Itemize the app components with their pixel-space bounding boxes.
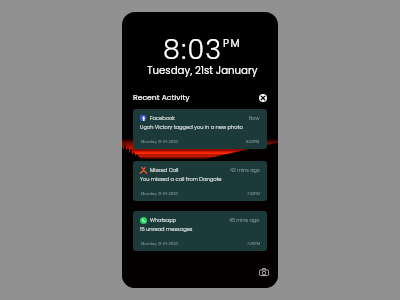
staticText: Now bbox=[249, 115, 260, 122]
button[interactable]: Missed Call bbox=[133, 161, 267, 201]
button[interactable]: Clear notifications bbox=[259, 94, 267, 102]
button[interactable]: Recent Activity bbox=[133, 92, 190, 103]
button[interactable]: Camera bbox=[251, 259, 276, 284]
staticText: Ugoh Victory tagged you in a new photo bbox=[140, 124, 243, 131]
staticText: 7:29PM bbox=[247, 241, 260, 246]
staticText: PM bbox=[223, 36, 242, 51]
staticText: 8:03PM bbox=[246, 139, 260, 144]
staticText: Monday 21-01-2020 bbox=[141, 139, 178, 144]
staticText: 8:03 bbox=[163, 31, 223, 69]
staticText: Monday 21-01-2020 bbox=[141, 241, 178, 246]
staticText: Monday 21-01-2020 bbox=[141, 191, 178, 196]
staticText: Tuesday, 21st January bbox=[147, 63, 258, 77]
staticText: 7:32PM bbox=[247, 191, 260, 196]
staticText: You missed a call from Dangote bbox=[140, 176, 222, 183]
button[interactable]: Facebook bbox=[133, 109, 267, 149]
button[interactable]: Whatsapp bbox=[133, 211, 267, 251]
staticText: 45 mins ago bbox=[229, 217, 260, 224]
staticText: 15 unread messages bbox=[140, 226, 193, 233]
staticText: 42 mins ago bbox=[230, 167, 260, 174]
staticText: Facebook bbox=[150, 115, 175, 122]
staticText: Missed Call bbox=[150, 167, 179, 174]
staticText: Whatsapp bbox=[150, 217, 177, 224]
